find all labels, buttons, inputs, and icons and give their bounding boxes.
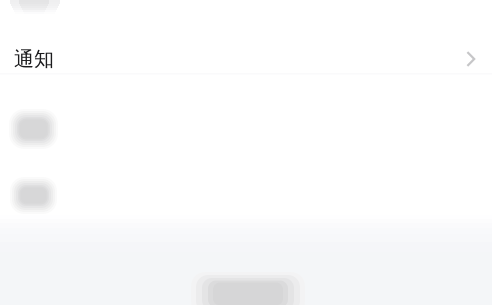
staticText: 通知 (14, 47, 54, 71)
button[interactable]: 通知 (0, 36, 492, 82)
